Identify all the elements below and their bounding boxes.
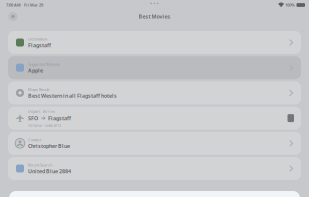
staticText: Contact [28,137,41,142]
staticText: Recent Search [28,162,52,168]
staticText: Best Western in all Flagstaff hotels [28,92,117,99]
staticText: Flagstaff [48,115,71,122]
staticText: Maps Result [28,87,49,92]
staticText: United Blue 2884 [28,168,71,175]
staticText: Depart [28,108,40,114]
button[interactable]: Depart [8,107,301,130]
button[interactable]: Contact [8,132,301,155]
staticText: 100% [285,2,295,8]
staticText: SFO [28,115,38,122]
staticText: Christopher Blue [28,142,70,149]
button[interactable]: Maps Result [8,81,301,104]
staticText: 7:00 AM [6,2,21,8]
button[interactable]: Recent Search [8,157,301,180]
staticText: Fri Mar 29 [24,2,43,8]
staticText: Apple [28,67,43,74]
staticText: Suggested Website [28,61,60,67]
button[interactable]: Destination [8,31,301,54]
staticText: On time · Gate B12 [28,122,61,128]
staticText: Arrive [43,108,55,114]
button[interactable]: Suggested Website [8,56,301,79]
staticText: Destination [28,36,47,42]
button[interactable]: Close [6,9,20,23]
staticText: Flagstaff [28,42,51,49]
staticText: Best Movies [138,13,170,20]
